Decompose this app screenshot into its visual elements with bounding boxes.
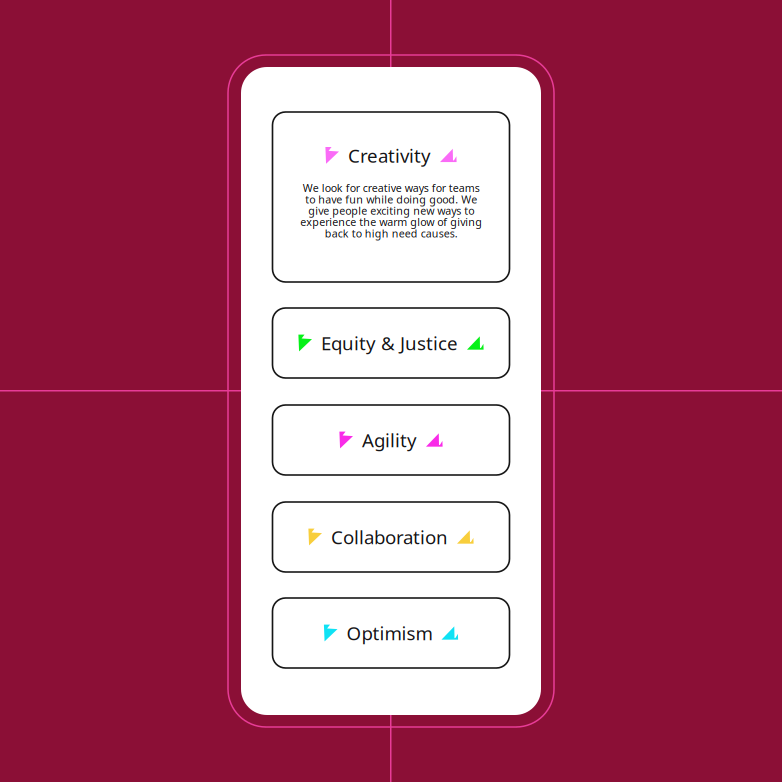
staticText: Agility xyxy=(362,428,417,452)
button[interactable]: Collaboration xyxy=(272,502,509,572)
staticText: We look for creative ways for teams to h… xyxy=(300,181,482,240)
button[interactable]: Equity & Justice xyxy=(272,308,509,378)
staticText: Collaboration xyxy=(331,525,448,549)
staticText: Equity & Justice xyxy=(321,331,458,355)
staticText: Optimism xyxy=(346,621,432,645)
button[interactable]: Agility xyxy=(272,405,509,475)
staticText: Creativity xyxy=(348,143,431,168)
button[interactable]: Optimism xyxy=(272,598,509,668)
